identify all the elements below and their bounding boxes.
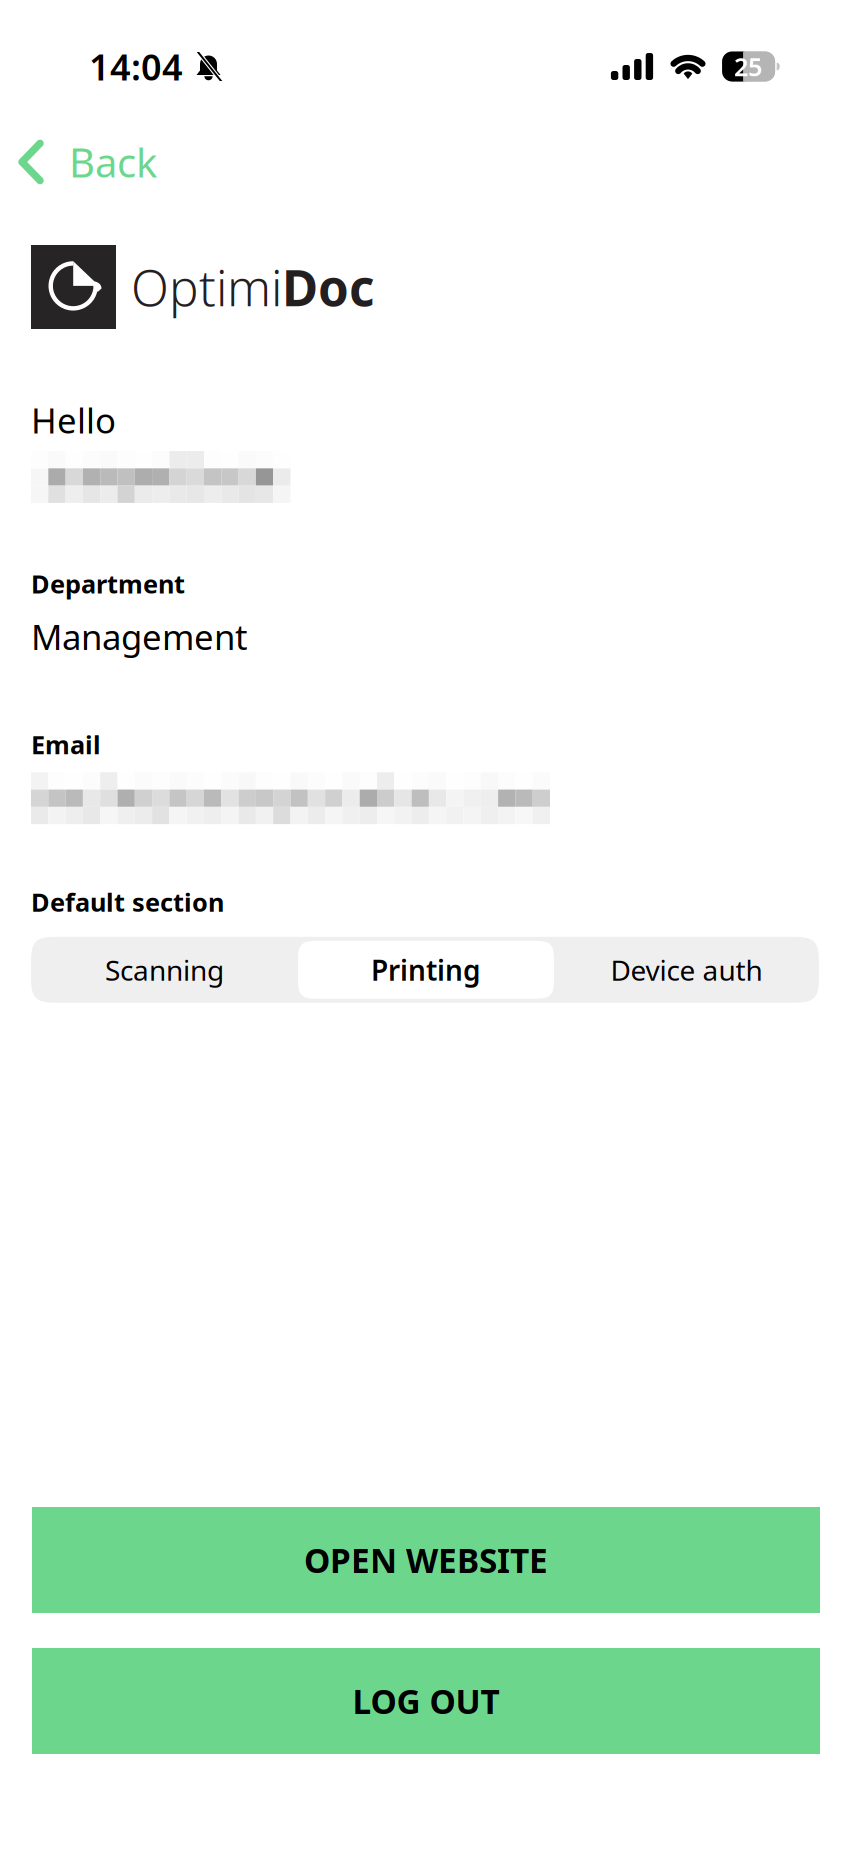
button[interactable]: LOG OUT <box>32 1648 820 1754</box>
staticText: Department <box>31 567 185 600</box>
staticText: 14:04 <box>89 43 183 90</box>
staticText: 25 <box>734 50 762 83</box>
button[interactable]: Back <box>0 133 187 191</box>
button[interactable]: Device auth <box>554 937 819 1003</box>
staticText: LOG OUT <box>352 1679 499 1723</box>
staticText: OPEN WEBSITE <box>304 1538 548 1582</box>
staticText: Scanning <box>105 951 224 988</box>
staticText: Management <box>31 614 248 660</box>
staticText: Email <box>31 728 101 761</box>
staticText: Doc <box>282 254 374 320</box>
staticText: Back <box>69 135 157 188</box>
staticText: Device auth <box>610 951 762 988</box>
button[interactable]: Scanning <box>31 937 298 1003</box>
button[interactable]: OPEN WEBSITE <box>32 1507 820 1613</box>
staticText: Default section <box>31 885 224 919</box>
staticText: Optimi <box>131 254 282 320</box>
button[interactable]: Printing <box>298 941 554 999</box>
staticText: Printing <box>371 951 481 988</box>
staticText: Hello <box>31 397 116 443</box>
